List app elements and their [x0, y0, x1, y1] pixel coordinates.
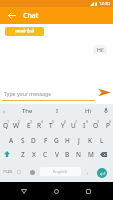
button[interactable]: .	[83, 164, 93, 180]
staticText: W	[13, 121, 20, 130]
staticText: 6	[64, 119, 67, 124]
button[interactable]: H	[62, 133, 73, 147]
button[interactable]: I	[45, 104, 70, 117]
button[interactable]: B	[62, 147, 73, 161]
button[interactable]: Q	[0, 118, 11, 132]
button[interactable]: S	[17, 133, 28, 147]
button[interactable]: Emoji	[14, 164, 24, 180]
staticText: B	[65, 150, 70, 159]
staticText: 4	[41, 119, 44, 124]
staticText: 12:30	[99, 1, 110, 7]
staticText: K	[88, 136, 93, 145]
button[interactable]: ?123	[0, 164, 15, 180]
button[interactable]: U	[68, 118, 79, 132]
staticText: 9	[97, 119, 100, 124]
button[interactable]: O	[90, 118, 101, 132]
staticText: F	[44, 136, 48, 145]
button[interactable]: W	[11, 118, 22, 132]
staticText: The	[22, 107, 33, 115]
button[interactable]: Shift	[1, 147, 13, 161]
button[interactable]: Hi	[76, 104, 100, 117]
button[interactable]: N	[73, 147, 84, 161]
button[interactable]: Y	[57, 118, 68, 132]
staticText: Q	[3, 121, 9, 130]
staticText: .	[87, 168, 89, 176]
button[interactable]: I	[79, 118, 90, 132]
staticText: 7	[75, 119, 78, 124]
button[interactable]: The	[10, 104, 45, 117]
staticText: V	[55, 150, 59, 159]
staticText: P	[106, 121, 110, 130]
button[interactable]: X	[28, 147, 39, 161]
button[interactable]: A	[6, 133, 17, 147]
button[interactable]: P	[102, 118, 113, 132]
button[interactable]: English	[40, 167, 81, 176]
staticText: H	[65, 136, 70, 145]
staticText: I	[83, 121, 86, 130]
button[interactable]: Back	[14, 182, 34, 200]
staticText: E	[27, 121, 31, 130]
button[interactable]: नमस्ते कैसे	[5, 27, 44, 36]
button[interactable]: V	[51, 147, 62, 161]
button[interactable]: Home	[46, 182, 66, 200]
button[interactable]: J	[73, 133, 84, 147]
staticText: Hi!	[97, 46, 104, 53]
staticText: Y	[61, 121, 65, 130]
staticText: 8	[86, 119, 89, 124]
button[interactable]: G	[51, 133, 62, 147]
button[interactable]: Switch language	[27, 164, 37, 180]
staticText: L	[100, 136, 104, 145]
staticText: 1	[7, 119, 10, 124]
staticText: 5	[52, 119, 55, 124]
staticText: ›	[3, 107, 6, 117]
button[interactable]: K	[85, 133, 96, 147]
staticText: English	[53, 169, 68, 175]
button[interactable]: Recents	[78, 182, 98, 200]
button[interactable]: R	[34, 118, 45, 132]
staticText: I	[56, 107, 59, 115]
staticText: Z	[21, 150, 25, 159]
staticText: Chat	[23, 11, 39, 21]
button[interactable]: E	[23, 118, 34, 132]
button[interactable]: T	[45, 118, 56, 132]
button[interactable]: Enter	[97, 168, 107, 178]
button[interactable]: Back	[4, 7, 19, 24]
button[interactable]: Z	[17, 147, 28, 161]
staticText: N	[76, 150, 81, 159]
button[interactable]: Send	[95, 86, 112, 99]
button[interactable]: Hi!	[93, 45, 107, 54]
button[interactable]: D	[28, 133, 39, 147]
staticText: T	[49, 121, 53, 130]
button[interactable]: Backspace	[97, 147, 110, 161]
staticText: D	[31, 136, 36, 145]
staticText: 2	[18, 119, 21, 124]
staticText: 3	[30, 119, 33, 124]
staticText: 0	[109, 119, 112, 124]
button[interactable]: C	[40, 147, 51, 161]
staticText: J	[78, 136, 80, 145]
button[interactable]: Voice input	[100, 105, 112, 116]
staticText: R	[37, 121, 42, 130]
staticText: X	[32, 150, 36, 159]
staticText: Hi	[85, 107, 91, 115]
staticText: नमस्ते कैसे	[15, 28, 35, 35]
button[interactable]: L	[96, 133, 107, 147]
staticText: Type your message	[4, 90, 52, 97]
staticText: G	[54, 136, 59, 145]
staticText: O	[93, 121, 99, 130]
staticText: C	[43, 150, 48, 159]
staticText: S	[21, 136, 25, 145]
button[interactable]: F	[40, 133, 51, 147]
staticText: ?123	[3, 169, 13, 175]
staticText: U	[71, 121, 76, 130]
button[interactable]: M	[85, 147, 96, 161]
staticText: A	[9, 136, 14, 145]
staticText: M	[88, 150, 94, 159]
